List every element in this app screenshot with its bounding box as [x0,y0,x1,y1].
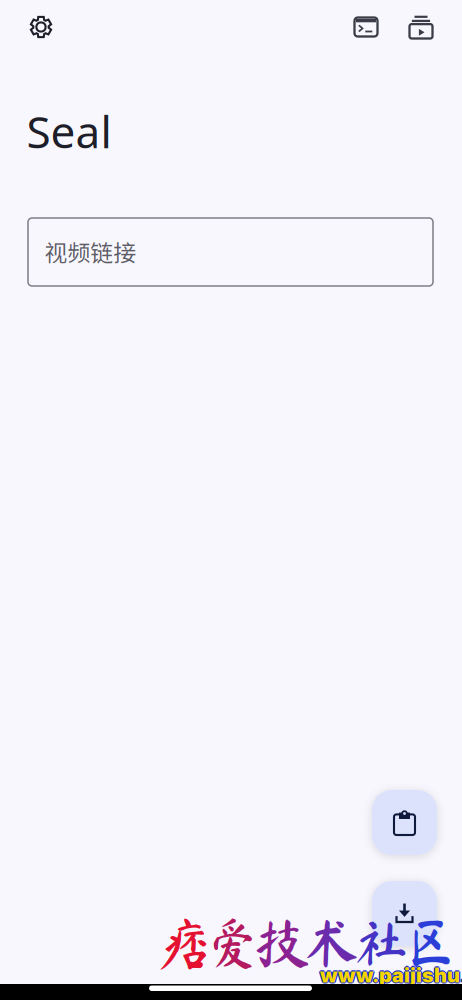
button[interactable]: Downloads [399,5,443,49]
staticText: www.paijishu.com [321,963,462,987]
staticText: Seal [26,102,111,160]
staticText: 痞 [156,915,211,970]
button[interactable]: Paste link [372,790,437,855]
button[interactable]: Settings [19,5,63,49]
staticText: www.paijishu.com [319,963,462,987]
button[interactable]: Console [344,5,388,49]
staticText: 视频链接 [44,235,136,268]
staticText: 区 [403,915,458,970]
staticText: www.paijishu.com [320,962,462,986]
staticText: www.paijishu.com [320,964,462,988]
staticText: 术 [304,915,359,970]
staticText: www.paijishu.com [320,963,462,987]
staticText: 爱 [205,915,260,970]
staticText: 社 [354,915,409,970]
staticText: 技 [255,915,310,970]
button[interactable]: Download [372,881,437,946]
